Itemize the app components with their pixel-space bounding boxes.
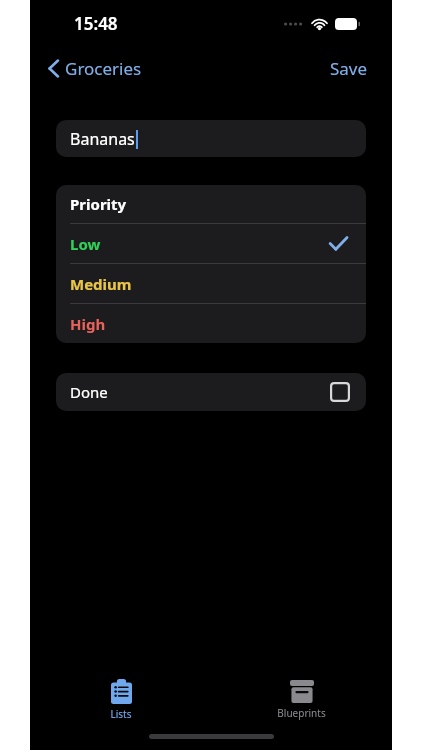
staticText: High <box>70 314 106 334</box>
staticText: Bananas <box>70 128 135 150</box>
button[interactable]: High <box>56 304 366 343</box>
button[interactable]: Save <box>324 53 374 84</box>
button[interactable]: Low <box>56 224 366 263</box>
staticText: Save <box>330 57 368 80</box>
staticText: Blueprints <box>277 706 326 720</box>
other: Blueprints <box>290 680 314 703</box>
staticText: Done <box>70 382 108 402</box>
button[interactable]: Medium <box>56 264 366 303</box>
button[interactable]: Groceries <box>42 53 148 84</box>
button[interactable]: Bananas <box>56 120 366 157</box>
button[interactable]: Lists <box>92 676 150 724</box>
staticText: Medium <box>70 274 132 294</box>
staticText: Low <box>70 234 101 254</box>
staticText: Groceries <box>65 57 142 80</box>
other: Lists <box>111 679 132 704</box>
button[interactable]: Done <box>56 373 366 411</box>
button[interactable]: Blueprints <box>263 677 340 723</box>
staticText: Lists <box>110 707 132 721</box>
staticText: 15:48 <box>74 12 118 35</box>
staticText: Priority <box>70 194 127 214</box>
